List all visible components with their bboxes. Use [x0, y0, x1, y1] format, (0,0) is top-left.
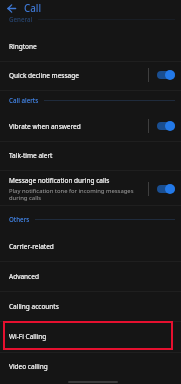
staticText: Talk-time alert — [9, 151, 53, 160]
button[interactable]: Vibrate when answered — [0, 111, 181, 141]
staticText: Message notification during calls — [9, 176, 110, 185]
staticText: Vibrate when answered — [9, 122, 81, 131]
staticText: Call — [24, 2, 42, 15]
button[interactable]: Message notification during calls — [0, 171, 181, 207]
staticText: Ringtone — [9, 42, 37, 51]
staticText: Quick decline message — [9, 71, 79, 80]
button[interactable]: Toggle — [157, 184, 175, 194]
staticText: Calling accounts — [9, 302, 59, 311]
staticText: Video calling — [9, 362, 48, 371]
button[interactable]: Talk-time alert — [0, 140, 181, 170]
staticText: Carrier-related — [9, 242, 54, 251]
staticText: General — [9, 15, 33, 23]
staticText: Call alerts — [9, 96, 39, 104]
button[interactable]: Ringtone — [0, 31, 181, 61]
button[interactable]: Back — [3, 0, 19, 16]
button[interactable]: Video calling — [0, 351, 181, 381]
button[interactable]: Toggle — [157, 70, 175, 80]
button[interactable]: Carrier-related — [0, 231, 181, 261]
staticText: Wi-Fi Calling — [9, 332, 47, 341]
button[interactable]: Calling accounts — [0, 291, 181, 321]
button[interactable]: Wi-Fi Calling — [0, 321, 181, 351]
staticText: Others — [9, 215, 30, 223]
button[interactable]: Advanced — [0, 261, 181, 291]
button[interactable]: Quick decline message — [0, 60, 181, 90]
staticText: Play notification tone for incoming mess… — [9, 187, 144, 202]
button[interactable]: Toggle — [157, 121, 175, 131]
staticText: Advanced — [9, 272, 39, 281]
